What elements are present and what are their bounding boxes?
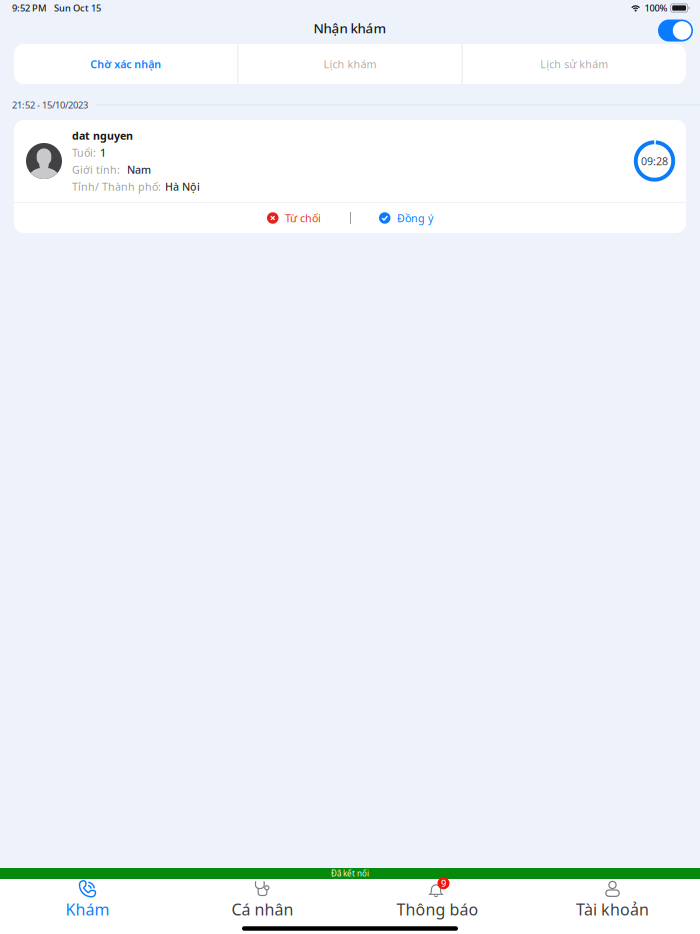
staticText: Nhận khám	[313, 19, 386, 37]
button[interactable]: Từ chối	[257, 203, 331, 233]
staticText: Sun Oct 15	[54, 2, 101, 14]
button[interactable]: Cá nhân	[175, 872, 350, 918]
button[interactable]: Đồng ý	[369, 203, 443, 233]
button[interactable]: Lịch sử khám	[463, 44, 686, 84]
staticText: Cá nhân	[231, 899, 293, 920]
staticText: Lịch khám	[323, 57, 376, 71]
staticText: 100%	[645, 2, 668, 14]
staticText: Đồng ý	[397, 211, 433, 225]
staticText: Tỉnh/ Thành phố:	[72, 179, 161, 194]
staticText: Chờ xác nhận	[90, 57, 161, 71]
staticText: Tuổi:	[72, 145, 96, 160]
button[interactable]: Lịch khám	[238, 44, 462, 84]
staticText: Thông báo	[396, 899, 478, 920]
button[interactable]: Chờ xác nhận	[14, 44, 237, 84]
button[interactable]: 9	[350, 872, 525, 918]
staticText: dat nguyen	[72, 128, 133, 143]
button[interactable]: Availability toggle	[658, 19, 693, 41]
button[interactable]: Khám	[0, 872, 175, 918]
staticText: Giới tính:	[72, 162, 120, 177]
staticText: 21:52 - 15/10/2023	[12, 99, 88, 111]
staticText: Nam	[127, 162, 151, 177]
staticText: Lịch sử khám	[540, 57, 608, 71]
button[interactable]: Tài khoản	[525, 872, 700, 918]
staticText: Từ chối	[285, 211, 321, 225]
staticText: 9:52 PM	[12, 2, 47, 14]
staticText: 9	[441, 877, 446, 889]
staticText: Tài khoản	[576, 899, 649, 920]
staticText: Hà Nội	[165, 179, 200, 194]
staticText: Khám	[65, 899, 109, 920]
staticText: 1	[100, 145, 106, 160]
staticText: 09:28	[641, 154, 668, 168]
staticText: Đã kết nối	[331, 868, 369, 879]
